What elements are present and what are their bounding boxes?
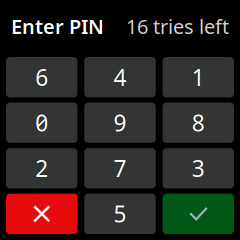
staticText: 2 <box>35 153 48 183</box>
button[interactable]: 9 <box>84 102 156 143</box>
button[interactable]: 6 <box>6 57 77 97</box>
button[interactable]: 5 <box>84 194 156 234</box>
staticText: 8 <box>192 108 205 138</box>
button[interactable]: 8 <box>162 102 234 143</box>
staticText: Enter PIN <box>11 13 104 40</box>
button[interactable]: 1 <box>162 57 234 97</box>
staticText: 3 <box>192 153 205 183</box>
staticText: 4 <box>113 62 126 92</box>
button[interactable]: 0 <box>6 102 77 143</box>
staticText: 1 <box>192 62 205 92</box>
button[interactable]: 4 <box>84 57 156 97</box>
button[interactable]: 2 <box>6 148 77 188</box>
button[interactable]: Cancel <box>6 194 77 234</box>
staticText: 0 <box>35 108 48 138</box>
staticText: 5 <box>113 199 126 229</box>
staticText: 16 tries left <box>126 13 229 40</box>
staticText: 7 <box>113 153 126 183</box>
staticText: 9 <box>113 108 126 138</box>
button[interactable]: 3 <box>162 148 234 188</box>
button[interactable]: 7 <box>84 148 156 188</box>
button[interactable]: Confirm <box>162 194 234 234</box>
staticText: 6 <box>35 62 48 92</box>
